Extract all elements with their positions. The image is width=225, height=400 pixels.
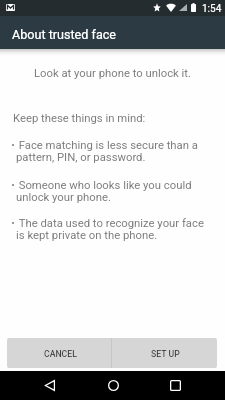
- staticText: About trusted face: [12, 27, 117, 42]
- button[interactable]: Back: [31, 371, 69, 400]
- button[interactable]: Recent apps: [156, 371, 194, 400]
- staticText: Face matching is less secure than a patt…: [16, 139, 206, 163]
- button[interactable]: SET UP: [112, 338, 217, 368]
- staticText: Look at your phone to unlock it.: [14, 67, 211, 80]
- staticText: Someone who looks like you could unlock …: [16, 179, 206, 203]
- button[interactable]: CANCEL: [7, 338, 111, 368]
- staticText: The data used to recognize your face is …: [16, 217, 206, 241]
- staticText: Keep these things in mind:: [13, 112, 146, 125]
- staticText: 1:54: [202, 3, 222, 15]
- button[interactable]: Home: [94, 371, 132, 400]
- staticText: SET UP: [151, 349, 180, 359]
- staticText: CANCEL: [44, 349, 77, 359]
